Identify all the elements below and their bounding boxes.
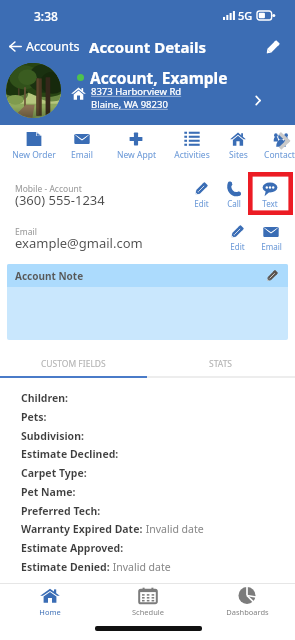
button[interactable]: Activities (166, 125, 218, 166)
staticText: Activities (174, 149, 210, 161)
staticText: Carpet Type: (21, 466, 87, 480)
button[interactable]: STATS (147, 345, 295, 376)
staticText: Sites (229, 149, 248, 161)
button[interactable]: Account, Example (0, 62, 295, 125)
staticText: Estimate Denied: (21, 560, 110, 574)
button[interactable]: Dashboards (212, 587, 282, 627)
staticText: Children: (21, 391, 68, 405)
staticText: Warranty Expired Date: (21, 522, 143, 536)
staticText: Account Details (89, 37, 207, 57)
staticText: Edit (194, 198, 209, 209)
staticText: Dashboards (226, 607, 269, 617)
staticText: 5G (238, 8, 253, 23)
button[interactable]: Edit (222, 224, 252, 252)
button[interactable]: Edit account (259, 34, 285, 60)
staticText: 3:38 (34, 8, 58, 24)
staticText: CUSTOM FIELDS (41, 358, 106, 370)
staticText: Estimate Declined: (21, 447, 119, 461)
staticText: Pet Name: (21, 485, 76, 499)
staticText: Account, Example (90, 67, 228, 88)
staticText: Accounts (26, 38, 80, 55)
staticText: New Order (12, 149, 56, 161)
staticText: Mobile - Account (15, 183, 82, 195)
button[interactable]: Accounts (0, 31, 84, 62)
button[interactable]: Text (255, 181, 285, 209)
button[interactable]: Email (0, 209, 295, 252)
staticText: STATS (209, 358, 233, 370)
button[interactable]: Edit (186, 181, 216, 209)
staticText: Text (262, 198, 278, 209)
button[interactable]: Email (256, 224, 286, 252)
staticText: Email (261, 241, 282, 252)
button[interactable]: Contacts (255, 125, 295, 166)
staticText: Preferred Tech: (21, 504, 101, 518)
staticText: (360) 555-1234 (15, 191, 105, 209)
button[interactable]: Call (219, 181, 249, 209)
staticText: Invalid date (110, 560, 171, 574)
staticText: Email (71, 149, 93, 161)
staticText: Schedule (132, 607, 164, 617)
staticText: Account Note (15, 269, 84, 283)
staticText: Email (15, 226, 37, 238)
staticText: 8373 Harborview Rd (91, 85, 182, 98)
button[interactable]: CUSTOM FIELDS (0, 345, 147, 376)
staticText: Edit (230, 241, 245, 252)
button[interactable]: Email (56, 125, 108, 166)
button[interactable]: Edit note (263, 267, 281, 285)
staticText: New Appt (117, 149, 156, 161)
staticText: Invalid date (143, 522, 204, 536)
staticText: Pets: (21, 410, 47, 424)
staticText: Home (39, 607, 61, 617)
button[interactable]: Sites (212, 125, 264, 166)
button[interactable]: Home (15, 587, 85, 627)
staticText: Estimate Approved: (21, 541, 124, 555)
staticText: example@gmail.com (15, 234, 143, 252)
button[interactable]: Open account (245, 87, 271, 113)
button[interactable]: Schedule (113, 587, 183, 627)
button[interactable]: Mobile - Account (0, 166, 295, 209)
staticText: Blaine, WA 98230 (91, 98, 168, 111)
staticText: Subdivision: (21, 429, 84, 443)
button[interactable]: New Appt (110, 125, 162, 166)
staticText: Call (227, 198, 241, 209)
button[interactable]: New Order (8, 125, 60, 166)
staticText: Contacts (264, 149, 295, 161)
